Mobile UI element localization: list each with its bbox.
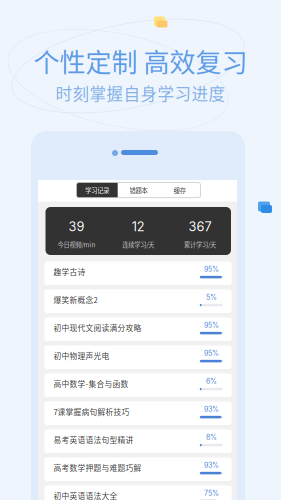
button[interactable]: 易考英语语法句型精讲 (44, 429, 231, 453)
staticText: 高考数学押题与难题巧解 (53, 462, 141, 473)
staticText: 累计学习/天 (184, 240, 216, 249)
button[interactable]: 错题本 (118, 182, 159, 198)
staticText: 今日视频/min (57, 240, 95, 249)
button[interactable]: 爆笑新概念2 (44, 289, 231, 313)
staticText: 缓存 (174, 185, 186, 195)
staticText: 93% (204, 461, 219, 469)
staticText: 12 (132, 219, 145, 234)
staticText: 学习记录 (85, 185, 109, 195)
staticText: 93% (204, 405, 219, 413)
staticText: 95% (204, 349, 219, 357)
staticText: 初中物理声光电 (53, 350, 109, 361)
staticText: 6% (206, 377, 217, 385)
staticText: 367 (189, 219, 212, 234)
button[interactable]: 7课掌握病句解析技巧 (44, 401, 231, 425)
staticText: 39 (68, 219, 84, 234)
staticText: 8% (206, 433, 217, 441)
staticText: 个性定制 高效复习 (33, 42, 247, 80)
staticText: 高中数学-集合与函数 (53, 378, 128, 389)
staticText: 连续学习/天 (122, 240, 154, 249)
button[interactable]: 趣学古诗 (44, 261, 231, 285)
staticText: 75% (204, 489, 219, 497)
button[interactable]: 高考数学押题与难题巧解 (44, 457, 231, 481)
staticText: 易考英语语法句型精讲 (53, 434, 133, 445)
staticText: 95% (204, 321, 219, 329)
staticText: 错题本 (129, 185, 147, 195)
staticText: 初中英语语法大全 (53, 490, 117, 500)
staticText: 95% (204, 265, 219, 273)
button[interactable]: 缓存 (159, 182, 200, 198)
staticText: 爆笑新概念2 (53, 294, 97, 305)
staticText: 趣学古诗 (53, 266, 85, 277)
button[interactable]: 初中英语语法大全 (44, 485, 231, 500)
staticText: 初中现代文阅读满分攻略 (53, 322, 141, 333)
button[interactable]: 初中现代文阅读满分攻略 (44, 317, 231, 341)
button[interactable]: 初中物理声光电 (44, 345, 231, 369)
staticText: 时刻掌握自身学习进度 (55, 81, 225, 105)
staticText: 5% (206, 293, 217, 301)
staticText: 7课掌握病句解析技巧 (53, 406, 129, 417)
button[interactable]: 学习记录 (76, 182, 118, 198)
button[interactable]: 高中数学-集合与函数 (44, 373, 231, 397)
